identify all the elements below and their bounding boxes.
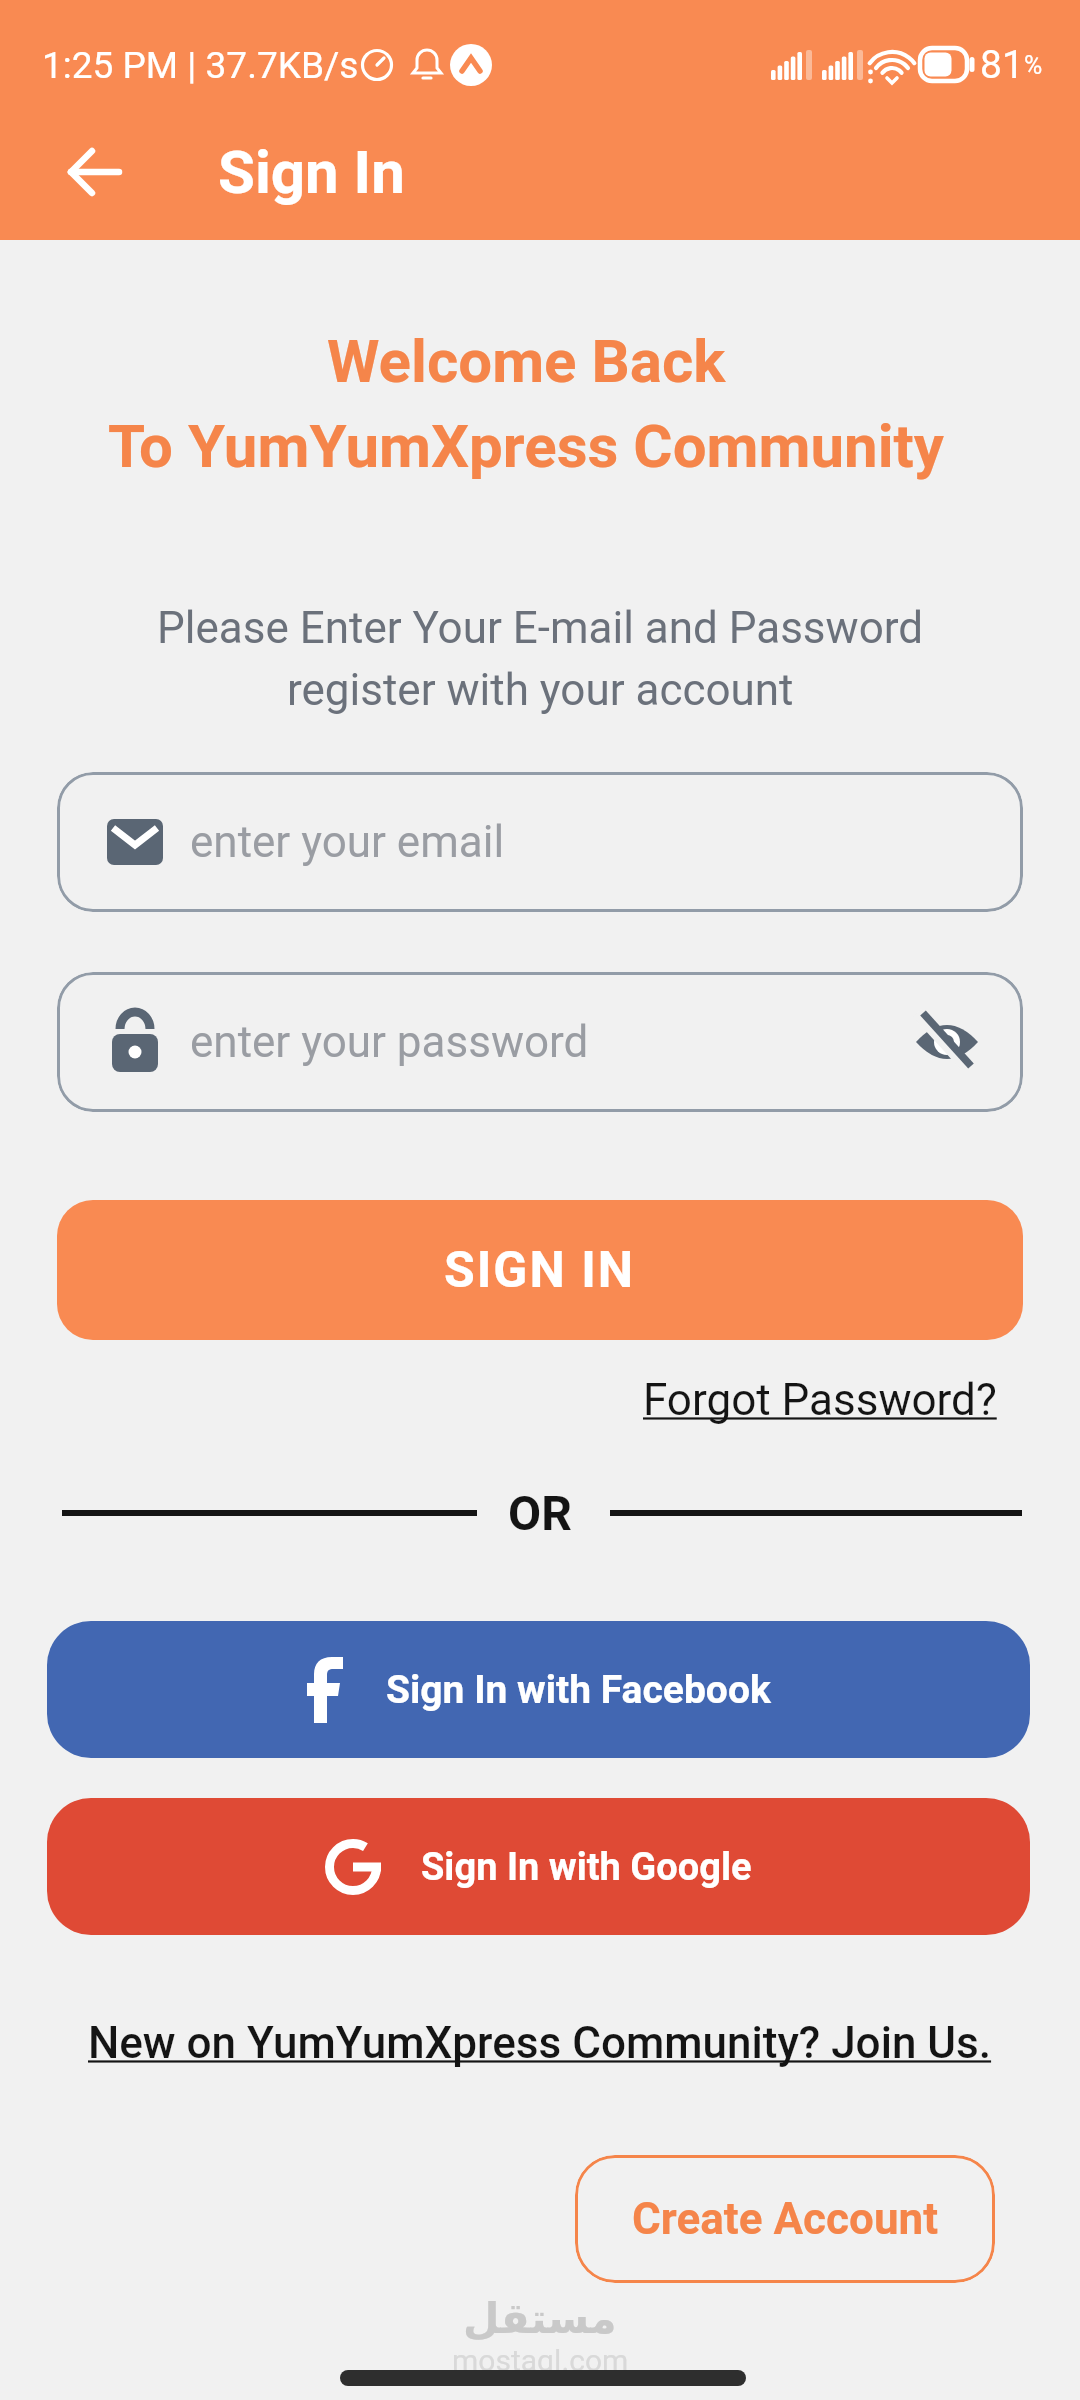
staticText: enter your password bbox=[190, 1016, 589, 1068]
staticText: % bbox=[1024, 51, 1043, 80]
staticText: OR bbox=[508, 1485, 572, 1541]
button[interactable] bbox=[48, 128, 142, 216]
staticText: Sign In with Facebook bbox=[386, 1667, 771, 1713]
staticText: 1:25 PM | 37.7KB/s bbox=[42, 44, 359, 87]
button[interactable]: Sign In with Google bbox=[47, 1798, 1030, 1935]
button[interactable]: Create Account bbox=[575, 2155, 995, 2283]
staticText: Create Account bbox=[632, 2193, 939, 2245]
button[interactable]: enter your email bbox=[57, 772, 1023, 912]
staticText: Welcome Back bbox=[327, 326, 726, 396]
button[interactable]: New on YumYumXpress Community? Join Us. bbox=[88, 2017, 992, 2069]
staticText: 81 bbox=[980, 42, 1024, 88]
button[interactable]: enter your password bbox=[57, 972, 1023, 1112]
staticText: register with your account bbox=[287, 664, 794, 716]
staticText: Forgot Password? bbox=[643, 1374, 997, 1426]
button[interactable]: Sign In with Facebook bbox=[47, 1621, 1030, 1758]
staticText: enter your email bbox=[190, 816, 505, 868]
staticText: SIGN IN bbox=[444, 1241, 636, 1300]
staticText: Sign In bbox=[218, 137, 405, 207]
staticText: Sign In with Google bbox=[421, 1845, 752, 1890]
button[interactable]: SIGN IN bbox=[57, 1200, 1023, 1340]
staticText: To YumYumXpress Community bbox=[108, 411, 944, 481]
button[interactable]: Forgot Password? bbox=[0, 1370, 997, 1430]
staticText: Please Enter Your E-mail and Password bbox=[157, 602, 924, 654]
staticText: mostaql.com bbox=[452, 2343, 629, 2378]
staticText: مستقل bbox=[463, 2294, 617, 2343]
